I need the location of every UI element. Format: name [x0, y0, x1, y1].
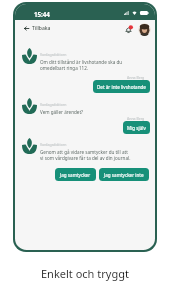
staticText: Tillbaka	[32, 25, 51, 32]
button[interactable]: Tillbaka	[24, 25, 51, 32]
staticText: Vardagsdoktorn	[40, 52, 67, 57]
staticText: Vardagsdoktorn	[40, 102, 67, 107]
staticText: Jag samtycker inte	[104, 172, 144, 178]
button[interactable]: Det är inte livshotande	[93, 80, 150, 93]
staticText: 15:44	[34, 10, 50, 18]
button[interactable]: Notifications	[124, 25, 133, 34]
staticText: Mig själv	[127, 125, 146, 131]
staticText: Vardagsdoktorn	[40, 142, 67, 147]
staticText: Anna Berg	[127, 116, 145, 121]
staticText: Jag samtycker	[60, 172, 91, 178]
button[interactable]: Profile	[138, 23, 151, 36]
staticText: Genom att gå vidare samtycker du till at…	[40, 149, 131, 161]
staticText: Vem gäller ärendet?	[40, 109, 84, 115]
staticText: Enkelt och tryggt	[41, 266, 129, 281]
button[interactable]: Mig själv	[123, 121, 150, 134]
button[interactable]: Jag samtycker inte	[99, 168, 149, 181]
staticText: Om ditt tillstånd är livshotande ska du …	[40, 59, 131, 71]
button[interactable]: Jag samtycker	[55, 168, 96, 181]
staticText: Det är inte livshotande	[97, 84, 146, 90]
staticText: Anna Berg	[127, 75, 145, 80]
